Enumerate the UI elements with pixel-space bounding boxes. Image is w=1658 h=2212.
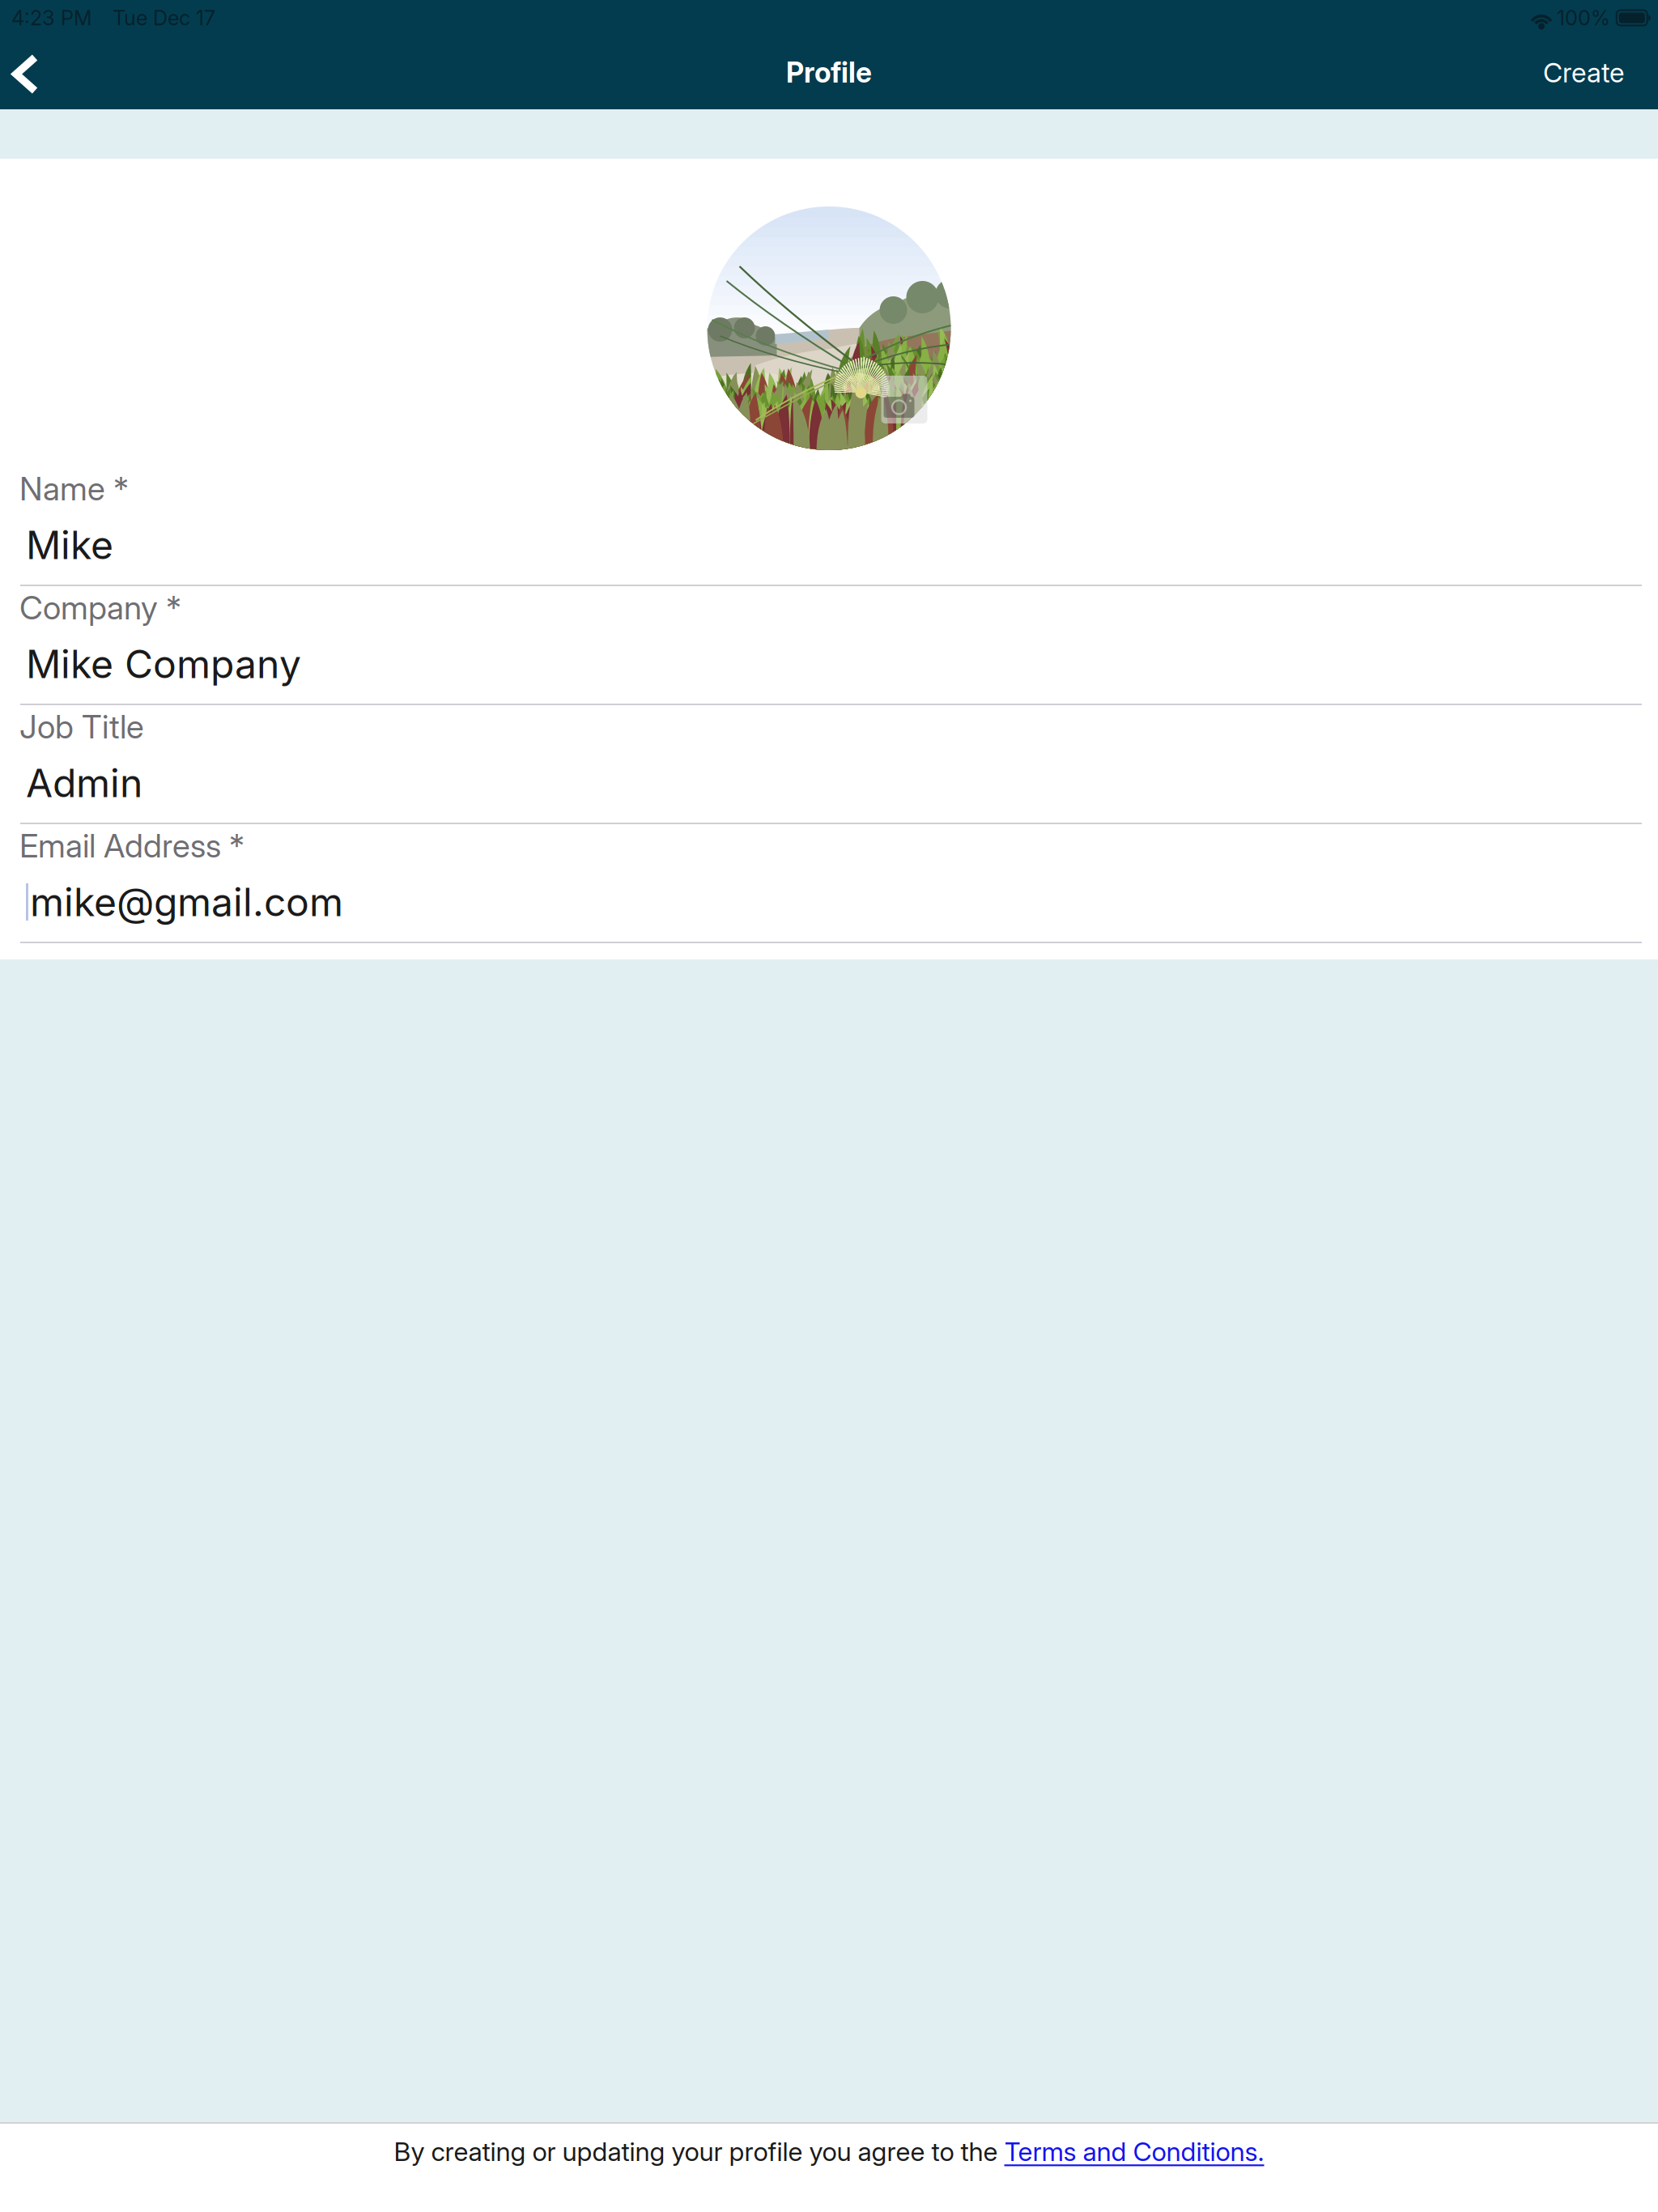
button[interactable]: Back xyxy=(0,36,52,109)
button[interactable]: Job Title xyxy=(0,705,1658,824)
button[interactable]: Name * xyxy=(0,467,1658,586)
staticText: Terms and Conditions. xyxy=(1004,2136,1264,2167)
staticText: 4:23 PM xyxy=(11,5,92,30)
staticText: Name * xyxy=(19,469,129,508)
button[interactable]: Company * xyxy=(0,586,1658,705)
button[interactable]: Change profile photo xyxy=(707,206,951,450)
staticText: Admin xyxy=(26,759,142,807)
staticText: Create xyxy=(1543,56,1624,89)
staticText: Mike Company xyxy=(26,640,301,687)
staticText: Mike xyxy=(26,521,113,568)
staticText: Profile xyxy=(786,55,872,89)
button[interactable]: Terms and Conditions. xyxy=(1004,2136,1264,2167)
staticText: Tue Dec 17 xyxy=(113,5,215,30)
staticText: 100% xyxy=(1557,5,1610,30)
button[interactable]: Email Address * xyxy=(0,824,1658,943)
staticText: mike@gmail.com xyxy=(30,878,343,926)
staticText: Company * xyxy=(19,588,181,627)
button[interactable]: Create xyxy=(1524,36,1658,109)
staticText: Job Title xyxy=(19,707,144,746)
staticText: Email Address * xyxy=(19,826,244,865)
staticText: By creating or updating your profile you… xyxy=(394,2136,1004,2167)
